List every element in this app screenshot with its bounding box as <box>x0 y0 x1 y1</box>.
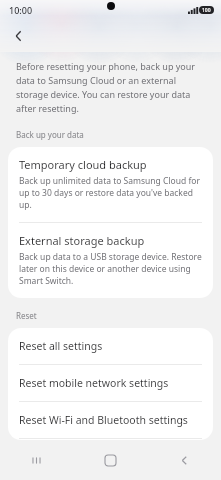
staticText: Reset mobile network settings <box>19 376 169 390</box>
button[interactable]: Temporary cloud backup <box>8 147 213 222</box>
button[interactable]: Back <box>4 21 34 51</box>
staticText: Temporary cloud backup <box>19 157 147 172</box>
button[interactable]: Reset accessibility settings <box>8 439 213 440</box>
staticText: Back up your data <box>16 129 84 140</box>
button[interactable]: Home <box>73 440 147 480</box>
staticText: Back up unlimited data to Samsung Cloud … <box>19 175 202 211</box>
button[interactable]: External storage backup <box>8 223 213 298</box>
staticText: External storage backup <box>19 233 145 248</box>
staticText: Reset <box>16 310 37 321</box>
staticText: Reset all settings <box>19 339 103 353</box>
staticText: Back up data to a USB storage device. Re… <box>19 251 202 287</box>
button[interactable]: Reset Wi-Fi and Bluetooth settings <box>8 402 213 438</box>
staticText: 100 <box>202 7 211 14</box>
button[interactable]: Recent apps <box>0 440 73 480</box>
button[interactable]: Reset all settings <box>8 328 213 364</box>
staticText: 10:00 <box>9 4 33 16</box>
button[interactable]: Reset mobile network settings <box>8 365 213 401</box>
staticText: Reset Wi-Fi and Bluetooth settings <box>19 413 188 427</box>
button[interactable]: Back <box>147 440 221 480</box>
staticText: Before resetting your phone, back up you… <box>16 60 207 115</box>
